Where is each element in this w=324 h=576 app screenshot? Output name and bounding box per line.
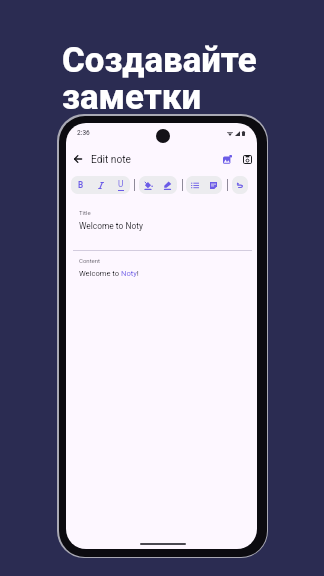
staticText: Создавайте заметки: [62, 40, 257, 117]
button[interactable]: Align: [204, 176, 222, 194]
staticText: Welcome to Noty!: [79, 269, 139, 278]
button[interactable]: Undo: [232, 176, 248, 194]
button[interactable]: Add image: [219, 151, 235, 167]
staticText: U: [118, 179, 124, 189]
button[interactable]: Bold: [71, 176, 91, 194]
button[interactable]: Bullet list: [186, 176, 204, 194]
staticText: B: [78, 180, 84, 190]
staticText: Edit note: [91, 154, 131, 166]
button[interactable]: Italic: [91, 176, 111, 194]
staticText: 2:36: [77, 129, 90, 137]
button[interactable]: Underline: [111, 176, 130, 194]
staticText: Content: [79, 257, 101, 264]
button[interactable]: Save note: [239, 151, 255, 167]
button[interactable]: Back: [70, 151, 86, 167]
button[interactable]: Fill color: [139, 176, 158, 194]
staticText: Title: [79, 209, 91, 216]
staticText: Welcome to Noty: [79, 221, 143, 231]
button[interactable]: Highlight: [158, 176, 177, 194]
